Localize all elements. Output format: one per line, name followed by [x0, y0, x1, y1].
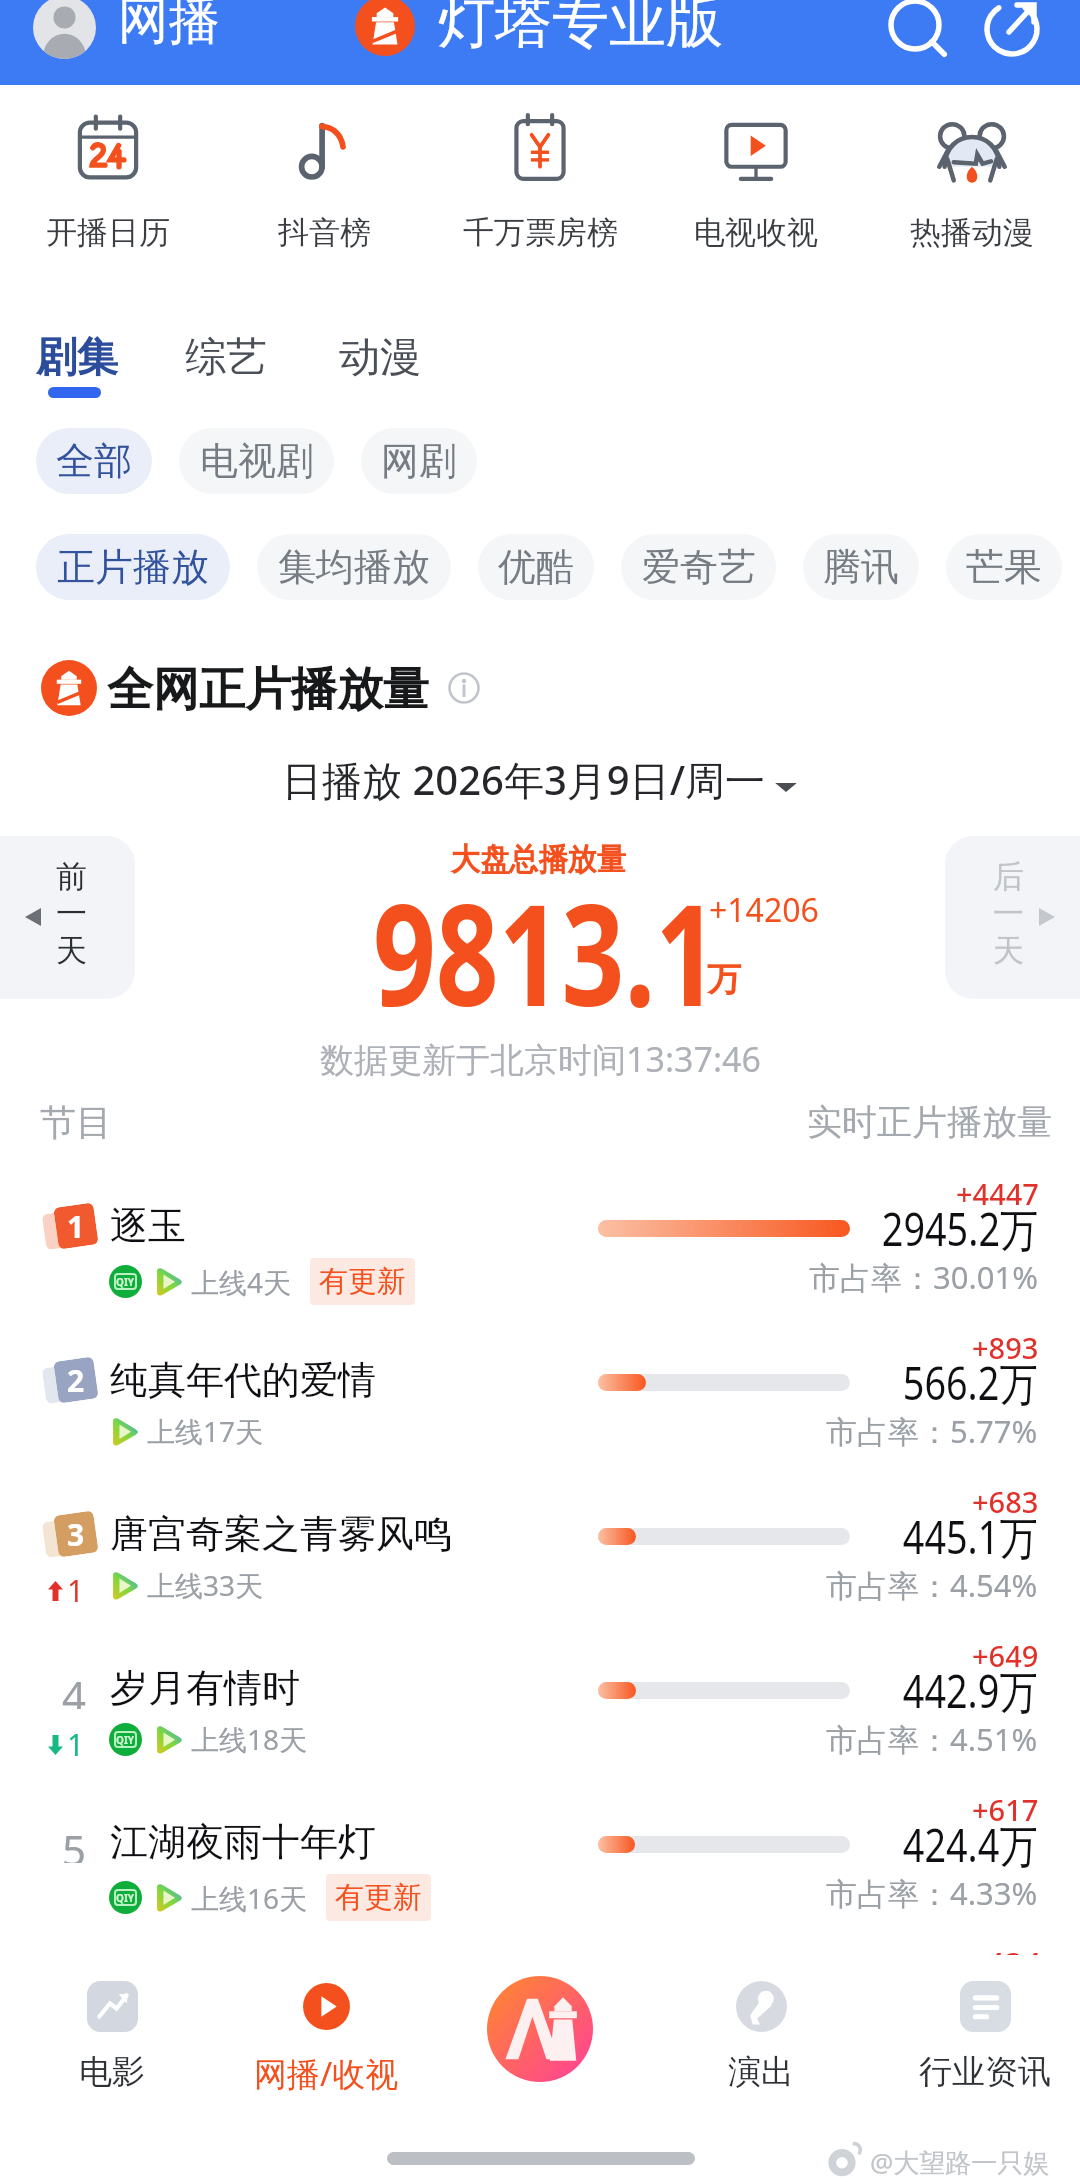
staticText: 日播放 2026年3月9日/周一: [282, 752, 766, 807]
staticText: 424.4万: [903, 1814, 1038, 1875]
button[interactable]: 正片播放: [36, 534, 230, 600]
button[interactable]: 优酷: [478, 534, 594, 600]
button[interactable]: 日播放 2026年3月9日/周一: [282, 752, 798, 807]
staticText: 动漫: [339, 332, 421, 384]
button[interactable]: 电视剧: [179, 428, 334, 494]
staticText: 9813.1: [373, 856, 718, 1047]
button[interactable]: 抖音榜: [216, 110, 432, 260]
staticText: +4447: [956, 1174, 1039, 1213]
staticText: @大望路一只娱: [870, 2144, 1050, 2180]
staticText: 网播/收视: [254, 2051, 399, 2096]
staticText: 有更新: [335, 1879, 422, 1916]
staticText: 热播动漫: [910, 213, 1034, 252]
staticText: 566.2万: [903, 1352, 1038, 1413]
staticText: 1: [67, 1724, 85, 1765]
staticText: 优酷: [498, 543, 574, 591]
staticText: 市占率：30.01%: [809, 1256, 1038, 1298]
button[interactable]: Search: [883, 0, 949, 59]
button[interactable]: 腾讯: [803, 534, 919, 600]
staticText: 网播: [118, 0, 220, 53]
staticText: 市占率：5.77%: [826, 1410, 1038, 1452]
button[interactable]: [166, 318, 276, 384]
staticText: 演出: [728, 2051, 794, 2093]
staticText: 行业资讯: [919, 2051, 1051, 2093]
staticText: 电影: [79, 2051, 145, 2093]
button[interactable]: 网剧: [361, 428, 477, 494]
button[interactable]: Next day: [945, 836, 1080, 999]
staticText: 正片播放: [57, 543, 209, 591]
staticText: 唐宫奇案之青雾风鸣: [110, 1510, 452, 1558]
button[interactable]: Previous day: [0, 836, 135, 999]
button[interactable]: [0, 1336, 1080, 1490]
staticText: 2945.2万: [882, 1198, 1038, 1259]
staticText: 综艺: [185, 332, 267, 384]
staticText: 442.9万: [903, 1660, 1038, 1721]
staticText: 大盘总播放量: [451, 840, 626, 879]
staticText: 开播日历: [46, 213, 170, 252]
staticText: +14206: [709, 888, 819, 932]
staticText: 一: [56, 894, 87, 933]
staticText: 天: [993, 931, 1024, 970]
staticText: 5: [62, 1821, 87, 1863]
staticText: 腾讯: [823, 543, 899, 591]
button[interactable]: 演出: [661, 1965, 861, 2095]
button[interactable]: [0, 1644, 1080, 1798]
staticText: 江湖夜雨十年灯: [110, 1818, 376, 1866]
staticText: +649: [972, 1636, 1039, 1675]
staticText: QIY: [116, 1891, 135, 1904]
staticText: 芒果: [966, 543, 1042, 591]
staticText: 1: [67, 1570, 85, 1611]
staticText: 网剧: [381, 437, 457, 485]
button[interactable]: Share: [980, 0, 1046, 59]
staticText: 逐玉: [110, 1202, 186, 1250]
staticText: +434: [968, 1942, 1042, 1986]
staticText: 一: [993, 894, 1024, 933]
staticText: 灯塔专业版: [438, 0, 723, 58]
button[interactable]: [318, 318, 428, 384]
staticText: 电视剧: [200, 437, 314, 485]
button[interactable]: [0, 1490, 1080, 1644]
staticText: 市占率：4.51%: [826, 1718, 1038, 1760]
button[interactable]: 千万票房榜: [432, 110, 648, 260]
staticText: 4: [62, 1667, 87, 1709]
staticText: +683: [972, 1482, 1039, 1521]
staticText: 445.1万: [903, 1506, 1038, 1567]
staticText: 上线33天: [147, 1566, 264, 1604]
staticText: 岁月有情时: [110, 1664, 300, 1712]
button[interactable]: [0, 1182, 1080, 1336]
staticText: 抖音榜: [278, 213, 371, 252]
staticText: 上线4天: [191, 1263, 292, 1301]
staticText: 全网正片播放量: [107, 661, 429, 719]
staticText: 3: [61, 1512, 90, 1556]
staticText: 万: [707, 958, 741, 1001]
staticText: QIY: [116, 1275, 135, 1288]
staticText: 市占率：4.54%: [826, 1564, 1038, 1606]
button[interactable]: 集均播放: [257, 534, 451, 600]
staticText: 节目: [40, 1100, 112, 1145]
button[interactable]: [0, 1798, 1080, 1952]
button[interactable]: 芒果: [946, 534, 1062, 600]
staticText: 实时正片播放量: [807, 1100, 1052, 1144]
button[interactable]: 电影: [12, 1965, 212, 2095]
button[interactable]: 爱奇艺: [621, 534, 776, 600]
button[interactable]: 全部: [36, 428, 152, 494]
button[interactable]: Profile: [33, 0, 96, 59]
staticText: 剧集: [36, 332, 118, 384]
button[interactable]: 行业资讯: [885, 1965, 1080, 2095]
staticText: 上线16天: [191, 1879, 308, 1917]
button[interactable]: 电视收视: [648, 110, 864, 260]
button[interactable]: AI assistant: [487, 1976, 593, 2082]
staticText: 千万票房榜: [463, 213, 618, 252]
button[interactable]: [20, 318, 136, 398]
staticText: 后: [993, 857, 1024, 896]
button[interactable]: 热播动漫: [864, 110, 1080, 260]
button[interactable]: 网播/收视: [226, 1965, 426, 2095]
staticText: 数据更新于北京时间13:37:46: [320, 1036, 761, 1082]
staticText: 有更新: [319, 1263, 406, 1300]
staticText: 电视收视: [694, 213, 818, 252]
button[interactable]: 开播日历: [0, 110, 216, 260]
staticText: 天: [56, 931, 87, 970]
staticText: 上线17天: [147, 1412, 264, 1450]
staticText: 爱奇艺: [642, 543, 756, 591]
staticText: 市占率：4.33%: [826, 1872, 1038, 1914]
